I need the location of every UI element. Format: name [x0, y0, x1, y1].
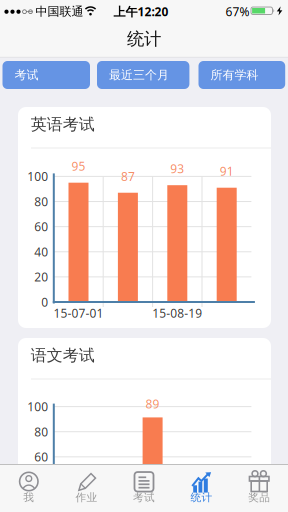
staticText: 15-08-19	[152, 305, 202, 321]
staticText: 所有学科	[210, 68, 258, 82]
staticText: 100	[27, 168, 48, 184]
staticText: 我	[23, 491, 34, 504]
staticText: 统计	[191, 491, 213, 504]
staticText: 89	[146, 396, 160, 412]
staticText: 60	[34, 449, 48, 465]
button[interactable]: 奖品	[230, 464, 288, 512]
staticText: 考试	[133, 491, 155, 504]
staticText: 奖品	[248, 491, 270, 504]
staticText: 93	[170, 161, 184, 177]
button[interactable]: 作业	[58, 464, 115, 512]
staticText: 60	[34, 219, 48, 235]
staticText: 考试	[14, 68, 38, 82]
staticText: 统计	[127, 28, 161, 50]
staticText: 0	[41, 294, 48, 310]
staticText: 87	[121, 168, 135, 184]
staticText: 91	[220, 163, 234, 179]
staticText: 15-07-01	[53, 305, 103, 321]
button[interactable]: 考试	[2, 61, 90, 89]
button[interactable]: 最近三个月	[97, 61, 189, 89]
staticText: 80	[34, 194, 48, 209]
staticText: 40	[34, 244, 48, 260]
staticText: 95	[71, 158, 85, 174]
staticText: 100	[27, 399, 48, 414]
staticText: 20	[34, 269, 48, 285]
staticText: 语文考试	[31, 346, 95, 365]
button[interactable]: 考试	[115, 464, 173, 512]
staticText: 最近三个月	[109, 68, 169, 82]
staticText: 英语考试	[31, 115, 95, 134]
staticText: 作业	[75, 491, 97, 504]
button[interactable]: 所有学科	[198, 61, 285, 89]
staticText: 上午12:20	[113, 3, 168, 19]
staticText: 中国联通	[35, 4, 83, 19]
staticText: 67%	[225, 3, 249, 19]
button[interactable]: 我	[0, 464, 58, 512]
staticText: 80	[34, 424, 48, 440]
button[interactable]: 统计	[173, 464, 230, 512]
